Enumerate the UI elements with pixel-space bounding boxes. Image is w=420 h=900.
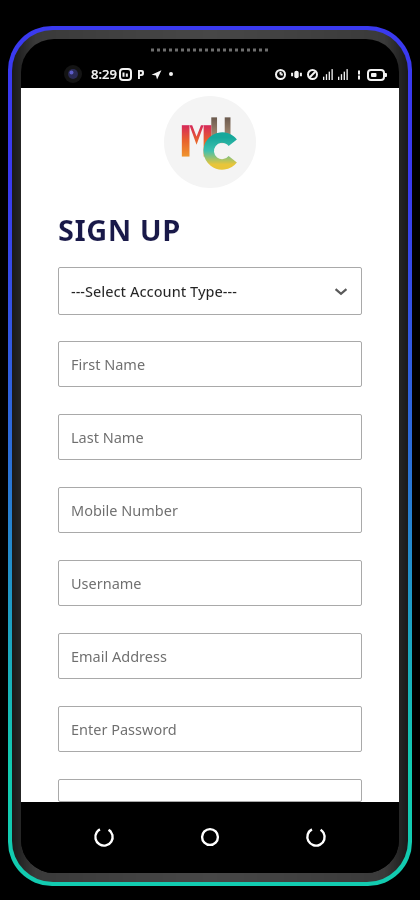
button[interactable]: First Name [58, 341, 362, 387]
button[interactable]: Mobile Number [58, 487, 362, 533]
staticText: SIGN UP [58, 210, 181, 249]
staticText: Enter Password [71, 719, 177, 739]
button[interactable]: Email Address [58, 633, 362, 679]
button[interactable]: Username [58, 560, 362, 606]
staticText: ---Select Account Type--- [71, 281, 333, 301]
other: Expand account type list [333, 283, 349, 299]
staticText: First Name [71, 354, 146, 374]
staticText: Mobile Number [71, 500, 178, 520]
button[interactable]: Recents [81, 814, 127, 860]
button[interactable]: Home [187, 814, 233, 860]
button[interactable]: Back [293, 814, 339, 860]
staticText: Username [71, 573, 142, 593]
staticText: Email Address [71, 646, 167, 666]
staticText: Last Name [71, 427, 144, 447]
button[interactable]: Last Name [58, 414, 362, 460]
button[interactable]: Enter Password [58, 706, 362, 752]
staticText: 8:29 [91, 65, 117, 83]
button[interactable]: ---Select Account Type--- [58, 267, 362, 315]
button[interactable] [58, 779, 362, 802]
staticText: P [137, 66, 145, 82]
